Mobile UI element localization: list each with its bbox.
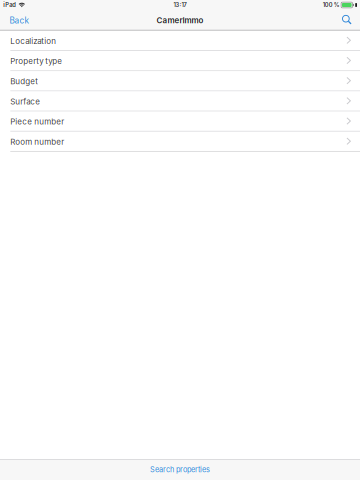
button[interactable]: Search properties — [134, 460, 226, 479]
button[interactable]: Piece number — [0, 112, 360, 132]
button[interactable]: Property type — [0, 51, 360, 71]
staticText: Room number — [10, 137, 64, 147]
button[interactable]: Budget — [0, 71, 360, 91]
button[interactable]: Room number — [0, 132, 360, 152]
staticText: Surface — [10, 97, 40, 106]
staticText: CamerImmo — [156, 16, 203, 25]
staticText: Back — [9, 15, 29, 25]
staticText: Piece number — [10, 117, 64, 127]
staticText: 13:17 — [173, 1, 186, 8]
button[interactable]: Back — [0, 10, 37, 31]
staticText: Property type — [10, 56, 62, 66]
button[interactable]: Localization — [0, 31, 360, 51]
staticText: Search properties — [150, 465, 210, 474]
staticText: iPad — [3, 1, 16, 8]
button[interactable]: Search — [334, 10, 360, 31]
button[interactable]: Surface — [0, 91, 360, 112]
staticText: 100 % — [323, 1, 340, 8]
staticText: Localization — [10, 36, 56, 46]
staticText: Budget — [10, 76, 38, 86]
